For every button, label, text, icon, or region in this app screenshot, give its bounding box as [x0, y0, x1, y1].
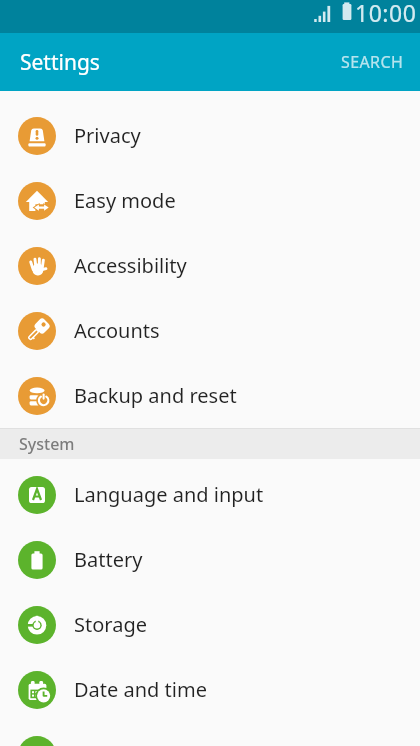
button[interactable]: Accounts — [0, 298, 420, 363]
staticText: Battery — [74, 546, 143, 573]
button[interactable]: Storage — [0, 592, 420, 657]
staticText: Backup and reset — [74, 382, 237, 409]
button[interactable]: Date and time — [0, 657, 420, 722]
staticText: Settings — [20, 48, 100, 77]
staticText: Date and time — [74, 676, 207, 703]
button[interactable]: About device — [0, 722, 420, 746]
staticText: Language and input — [74, 481, 264, 508]
staticText: 10:00 — [355, 0, 417, 28]
button[interactable]: Privacy — [0, 103, 420, 168]
staticText: System — [19, 433, 75, 455]
staticText: Accounts — [74, 317, 160, 344]
button[interactable]: Battery — [0, 527, 420, 592]
button[interactable]: SEARCH — [341, 33, 420, 91]
button[interactable]: Backup and reset — [0, 363, 420, 428]
staticText: Storage — [74, 611, 147, 638]
staticText: Privacy — [74, 122, 141, 149]
staticText: SEARCH — [341, 51, 404, 73]
button[interactable]: Accessibility — [0, 233, 420, 298]
staticText: Easy mode — [74, 187, 176, 214]
staticText: Accessibility — [74, 252, 187, 279]
button[interactable]: Easy mode — [0, 168, 420, 233]
button[interactable]: Language and input — [0, 462, 420, 527]
